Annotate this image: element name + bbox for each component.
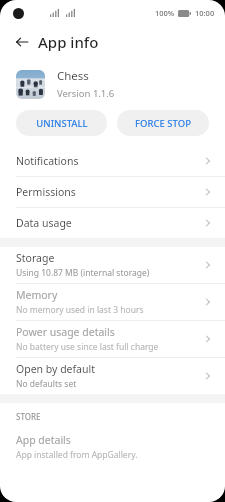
button[interactable]: Back (8, 28, 36, 56)
button[interactable]: Notifications (0, 146, 225, 176)
other: Open (203, 155, 213, 167)
staticText: Data usage (16, 216, 203, 230)
staticText: Memory (16, 288, 58, 302)
other: Open (203, 217, 213, 229)
staticText: Storage (16, 251, 55, 265)
staticText: App installed from AppGallery. (16, 449, 138, 461)
button[interactable]: Permissions (0, 177, 225, 207)
staticText: Open by default (16, 362, 96, 376)
staticText: App info (38, 32, 99, 52)
other: Open (203, 186, 213, 198)
button[interactable]: Memory (0, 284, 225, 320)
button[interactable]: FORCE STOP (117, 110, 209, 136)
staticText: FORCE STOP (135, 117, 191, 130)
button[interactable]: App details (0, 429, 225, 465)
staticText: No memory used in last 3 hours (16, 304, 144, 316)
staticText: Power usage details (16, 325, 115, 339)
other: Open (203, 259, 213, 271)
staticText: Permissions (16, 185, 203, 199)
button[interactable]: Open by default (0, 358, 225, 394)
staticText: 10:00 (195, 8, 215, 18)
other: Open (203, 333, 213, 345)
button[interactable]: Power usage details (0, 321, 225, 357)
staticText: Notifications (16, 154, 203, 168)
staticText: Chess (57, 68, 89, 84)
staticText: UNINSTALL (36, 117, 88, 130)
button[interactable]: UNINSTALL (16, 110, 107, 136)
staticText: App details (16, 433, 71, 447)
staticText: No battery use since last full charge (16, 341, 159, 353)
other: Open (203, 370, 213, 382)
button[interactable]: Storage (0, 247, 225, 283)
staticText: 100% (155, 8, 175, 18)
staticText: STORE (16, 411, 41, 422)
other: Open (203, 296, 213, 308)
button[interactable]: Data usage (0, 208, 225, 238)
staticText: No defaults set (16, 378, 77, 390)
staticText: Version 1.1.6 (57, 87, 115, 100)
staticText: Using 10.87 MB (internal storage) (16, 267, 150, 279)
